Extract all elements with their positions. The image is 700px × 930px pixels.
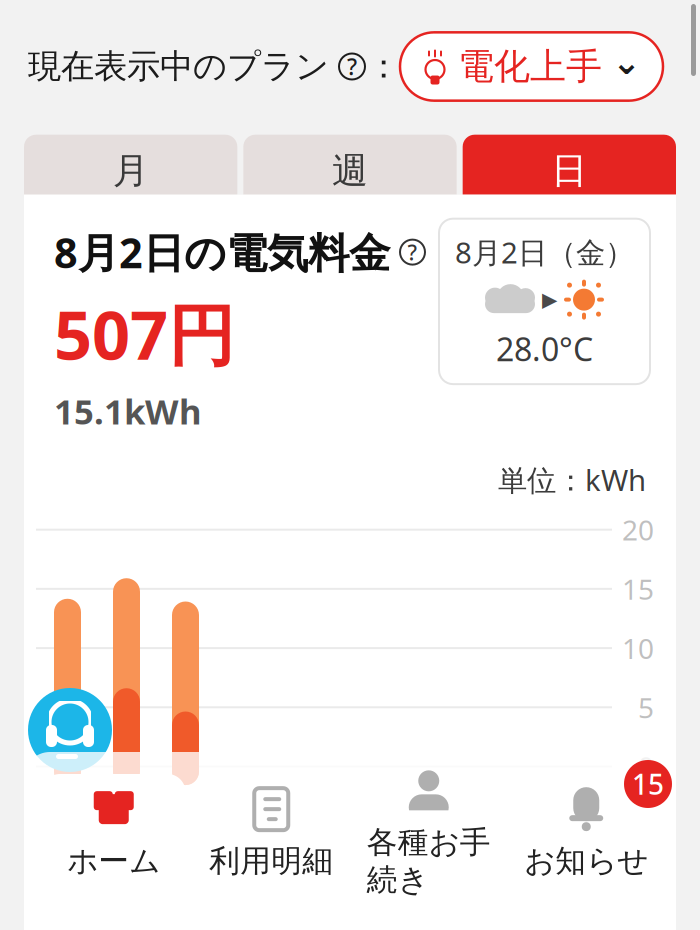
staticText: ? (407, 238, 417, 266)
staticText: 各種お手続き (367, 823, 491, 899)
staticText: 日 (551, 149, 587, 193)
staticText: ： (367, 46, 400, 87)
staticText: お知らせ (524, 842, 648, 880)
staticText: ホーム (67, 842, 160, 880)
button[interactable]: 利用明細 (199, 774, 343, 892)
staticText: 5 (638, 689, 654, 726)
staticText: 28.0°C (496, 328, 593, 370)
button[interactable]: 月 (24, 135, 237, 195)
staticText: 週 (332, 149, 368, 193)
staticText: ⌄ (612, 42, 641, 82)
staticText: 月 (113, 149, 149, 193)
staticText: 20 (622, 511, 654, 548)
button[interactable]: 電気料金についての説明 (400, 240, 425, 265)
staticText: 現在表示中のプラン (28, 46, 329, 87)
button[interactable]: サポートに問い合わせ (28, 688, 112, 772)
staticText: 利用明細 (209, 842, 333, 880)
button[interactable]: 週 (243, 135, 457, 195)
staticText: 単位：kWh (498, 460, 646, 499)
staticText: 507円 (54, 290, 235, 378)
staticText: ? (347, 51, 357, 81)
button[interactable]: 各種お手続き (357, 774, 500, 892)
button[interactable]: お知らせ (514, 774, 658, 892)
staticText: 15.1kWh (54, 388, 202, 434)
staticText: 10 (622, 629, 654, 667)
button[interactable]: プランについての説明 (329, 53, 367, 79)
staticText: 8月2日の電気料金 (54, 225, 390, 280)
staticText: 15 (622, 570, 654, 607)
button[interactable]: ホーム (42, 774, 185, 892)
staticText: 電化上手 (458, 44, 602, 89)
button[interactable]: 電化上手 (400, 32, 663, 101)
button[interactable]: 日 (463, 135, 676, 195)
staticText: 15 (632, 765, 664, 803)
staticText: 8月2日（金） (455, 233, 634, 272)
staticText: ▶ (542, 288, 557, 311)
staticText: 0 (638, 748, 654, 785)
